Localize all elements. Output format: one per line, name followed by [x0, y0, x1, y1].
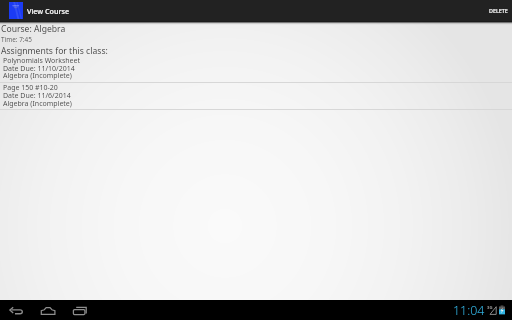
button[interactable]: Home	[40, 305, 56, 316]
button[interactable]	[0, 55, 512, 82]
button[interactable]: Back	[8, 304, 24, 316]
staticText: 3G	[487, 305, 493, 311]
staticText: Course: Algebra	[1, 23, 66, 35]
staticText: Polynomials Worksheet	[3, 56, 80, 66]
staticText: Algebra (Incomplete)	[3, 99, 72, 109]
button[interactable]	[0, 82, 512, 109]
button[interactable]: Recent apps	[72, 305, 89, 316]
staticText: Date Due: 11/10/2014	[3, 64, 75, 74]
staticText: Algebra (Incomplete)	[3, 71, 72, 81]
staticText: Page 150 #10-20	[3, 83, 58, 93]
staticText: 11:04	[453, 302, 485, 319]
staticText: Date Due: 11/6/2014	[3, 91, 71, 101]
staticText: View Course	[27, 6, 70, 16]
staticText: DELETE	[489, 7, 508, 14]
staticText: Time: 7:45	[1, 35, 32, 44]
button[interactable]: DELETE	[483, 0, 512, 21]
staticText: Assignments for this class:	[1, 45, 108, 57]
